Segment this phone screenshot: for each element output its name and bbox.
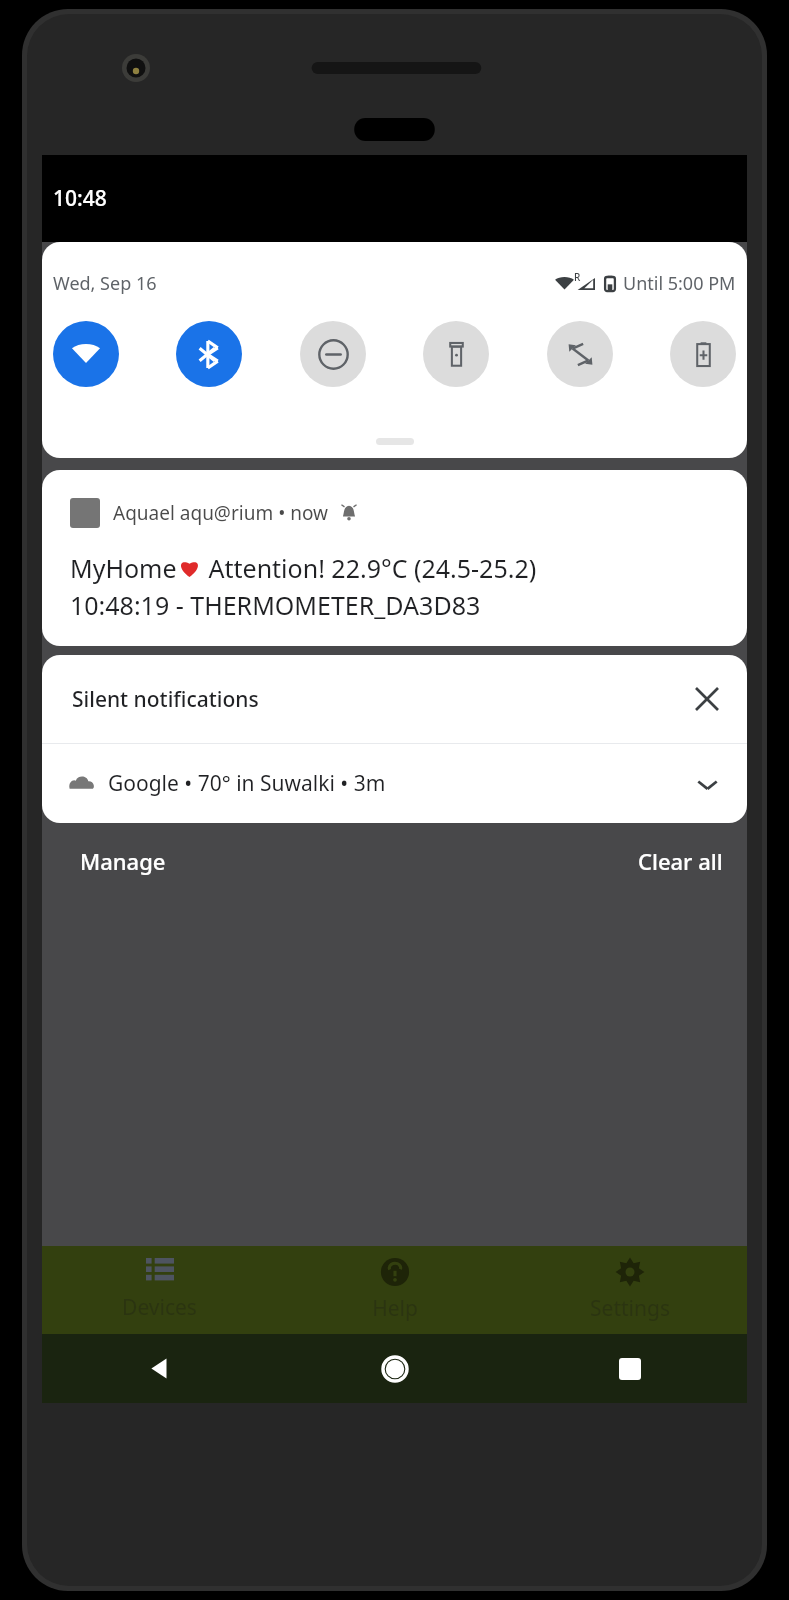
staticText: Wed, Sep 16	[53, 271, 157, 296]
staticText: Aquael aqu@rium • now	[113, 500, 329, 526]
button[interactable]: Battery saver	[670, 321, 736, 387]
button[interactable]: Help	[277, 1246, 512, 1334]
button[interactable]: Settings	[512, 1246, 747, 1334]
staticText: R	[574, 270, 581, 284]
staticText: Attention! 22.9°C (24.5-25.2)	[202, 551, 537, 585]
staticText: Google • 70° in Suwalki • 3m	[108, 769, 386, 798]
staticText: 10:48	[53, 184, 107, 213]
staticText: MyHome	[70, 551, 177, 585]
staticText: Manage	[80, 846, 166, 876]
staticText: Clear all	[638, 846, 723, 876]
button[interactable]: Recent apps	[512, 1334, 747, 1403]
button[interactable]: Wi-Fi	[53, 321, 119, 387]
staticText: Help	[372, 1294, 418, 1323]
button[interactable]: Do not disturb	[300, 321, 366, 387]
button[interactable]: Expand notification	[687, 764, 727, 804]
button[interactable]: Bluetooth	[176, 321, 242, 387]
button[interactable]: Manage	[42, 834, 186, 888]
staticText: 10:48:19 - THERMOMETER_DA3D83	[70, 588, 481, 622]
button[interactable]: Silent notifications	[42, 655, 747, 743]
button[interactable]: Back	[42, 1334, 277, 1403]
staticText: Devices	[122, 1293, 197, 1322]
staticText: Silent notifications	[72, 685, 259, 714]
button[interactable]: Dismiss silent notifications	[687, 679, 727, 719]
button[interactable]: Auto-rotate	[547, 321, 613, 387]
button[interactable]: Google • 70° in Suwalki • 3m	[42, 744, 747, 823]
button[interactable]: Flashlight	[423, 321, 489, 387]
staticText: Settings	[590, 1294, 670, 1323]
button[interactable]: Clear all	[618, 834, 747, 888]
button[interactable]: Devices	[42, 1246, 277, 1334]
staticText: Until 5:00 PM	[623, 271, 736, 296]
button[interactable]: Aquael aqu@rium • now	[42, 470, 747, 646]
button[interactable]: Home	[277, 1334, 512, 1403]
